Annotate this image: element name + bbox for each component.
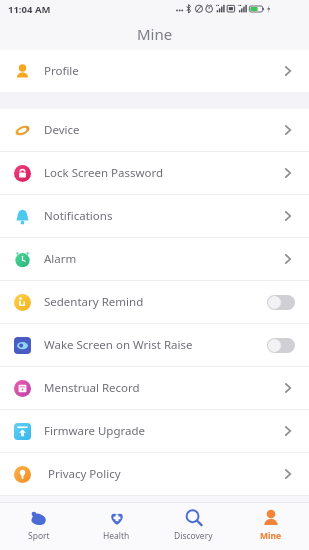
staticText: Notifications: [44, 208, 281, 224]
button[interactable]: Menstrual Record: [0, 367, 309, 409]
staticText: Device: [44, 122, 281, 138]
staticText: Menstrual Record: [44, 380, 281, 396]
staticText: Wake Screen on Wrist Raise: [44, 337, 267, 353]
staticText: Lock Screen Password: [44, 165, 281, 181]
staticText: Health: [103, 530, 130, 542]
button[interactable]: Sport: [0, 503, 78, 550]
staticText: Profile: [44, 63, 281, 79]
staticText: Mine: [137, 24, 173, 44]
button[interactable]: Privacy Policy: [0, 453, 309, 495]
button[interactable]: Notifications: [0, 195, 309, 237]
staticText: Firmware Upgrade: [44, 423, 281, 439]
button[interactable]: Wake Screen on Wrist Raise: [0, 324, 309, 366]
staticText: 11:04 AM: [8, 3, 51, 16]
staticText: Alarm: [44, 251, 281, 267]
button[interactable]: Lock Screen Password: [0, 152, 309, 194]
button[interactable]: Sedentary Remind: [0, 281, 309, 323]
button[interactable]: Device: [0, 109, 309, 151]
staticText: Sedentary Remind: [44, 294, 267, 310]
button[interactable]: Discovery: [155, 503, 232, 550]
button[interactable]: Mine: [232, 503, 309, 550]
button[interactable]: Profile: [0, 50, 309, 92]
button[interactable]: Health: [78, 503, 155, 550]
button[interactable]: Firmware Upgrade: [0, 410, 309, 452]
staticText: Discovery: [174, 530, 213, 542]
staticText: Mine: [260, 530, 282, 542]
button[interactable]: Alarm: [0, 238, 309, 280]
staticText: Privacy Policy: [48, 466, 281, 482]
staticText: Sport: [28, 530, 50, 542]
